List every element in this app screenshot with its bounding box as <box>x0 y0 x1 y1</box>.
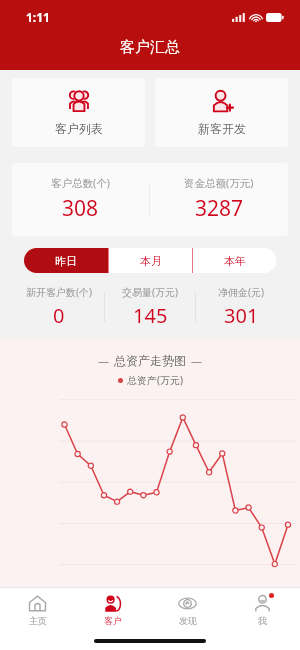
staticText: 总资产走势图 <box>114 353 186 368</box>
staticText: 新开客户数(个) <box>26 285 92 299</box>
staticText: 客户总数(个) <box>51 176 110 190</box>
staticText: 客户列表 <box>55 121 103 136</box>
staticText: 308 <box>62 194 99 223</box>
staticText: 发现 <box>179 615 197 626</box>
staticText: 本月 <box>140 254 162 268</box>
staticText: 3287 <box>195 194 244 223</box>
staticText: 本年 <box>224 254 246 268</box>
staticText: 资金总额(万元) <box>184 176 254 190</box>
staticText: 交易量(万元) <box>122 285 178 299</box>
staticText: 主页 <box>29 615 47 626</box>
button[interactable]: 本月 <box>109 248 192 273</box>
button[interactable]: 新客开发 <box>155 78 288 147</box>
staticText: 总资产(万元) <box>127 373 183 387</box>
button[interactable]: 主页 <box>0 588 75 632</box>
staticText: 客户 <box>104 615 122 626</box>
staticText: — <box>98 353 109 368</box>
staticText: 0 <box>53 302 65 329</box>
staticText: 我 <box>258 615 267 626</box>
button[interactable]: 本年 <box>193 248 276 273</box>
staticText: 1:11 <box>26 9 50 25</box>
staticText: 客户汇总 <box>120 38 180 57</box>
staticText: 145 <box>133 302 168 329</box>
staticText: 301 <box>224 302 259 329</box>
staticText: 净佣金(元) <box>218 285 264 299</box>
button[interactable]: 我 <box>225 588 300 632</box>
button[interactable]: 客户列表 <box>12 78 145 147</box>
staticText: 新客开发 <box>198 121 246 136</box>
button[interactable]: 客户 <box>75 588 150 632</box>
button[interactable]: 发现 <box>150 588 225 632</box>
staticText: 昨日 <box>55 254 77 268</box>
button[interactable]: 昨日 <box>24 248 108 273</box>
staticText: — <box>191 353 202 368</box>
